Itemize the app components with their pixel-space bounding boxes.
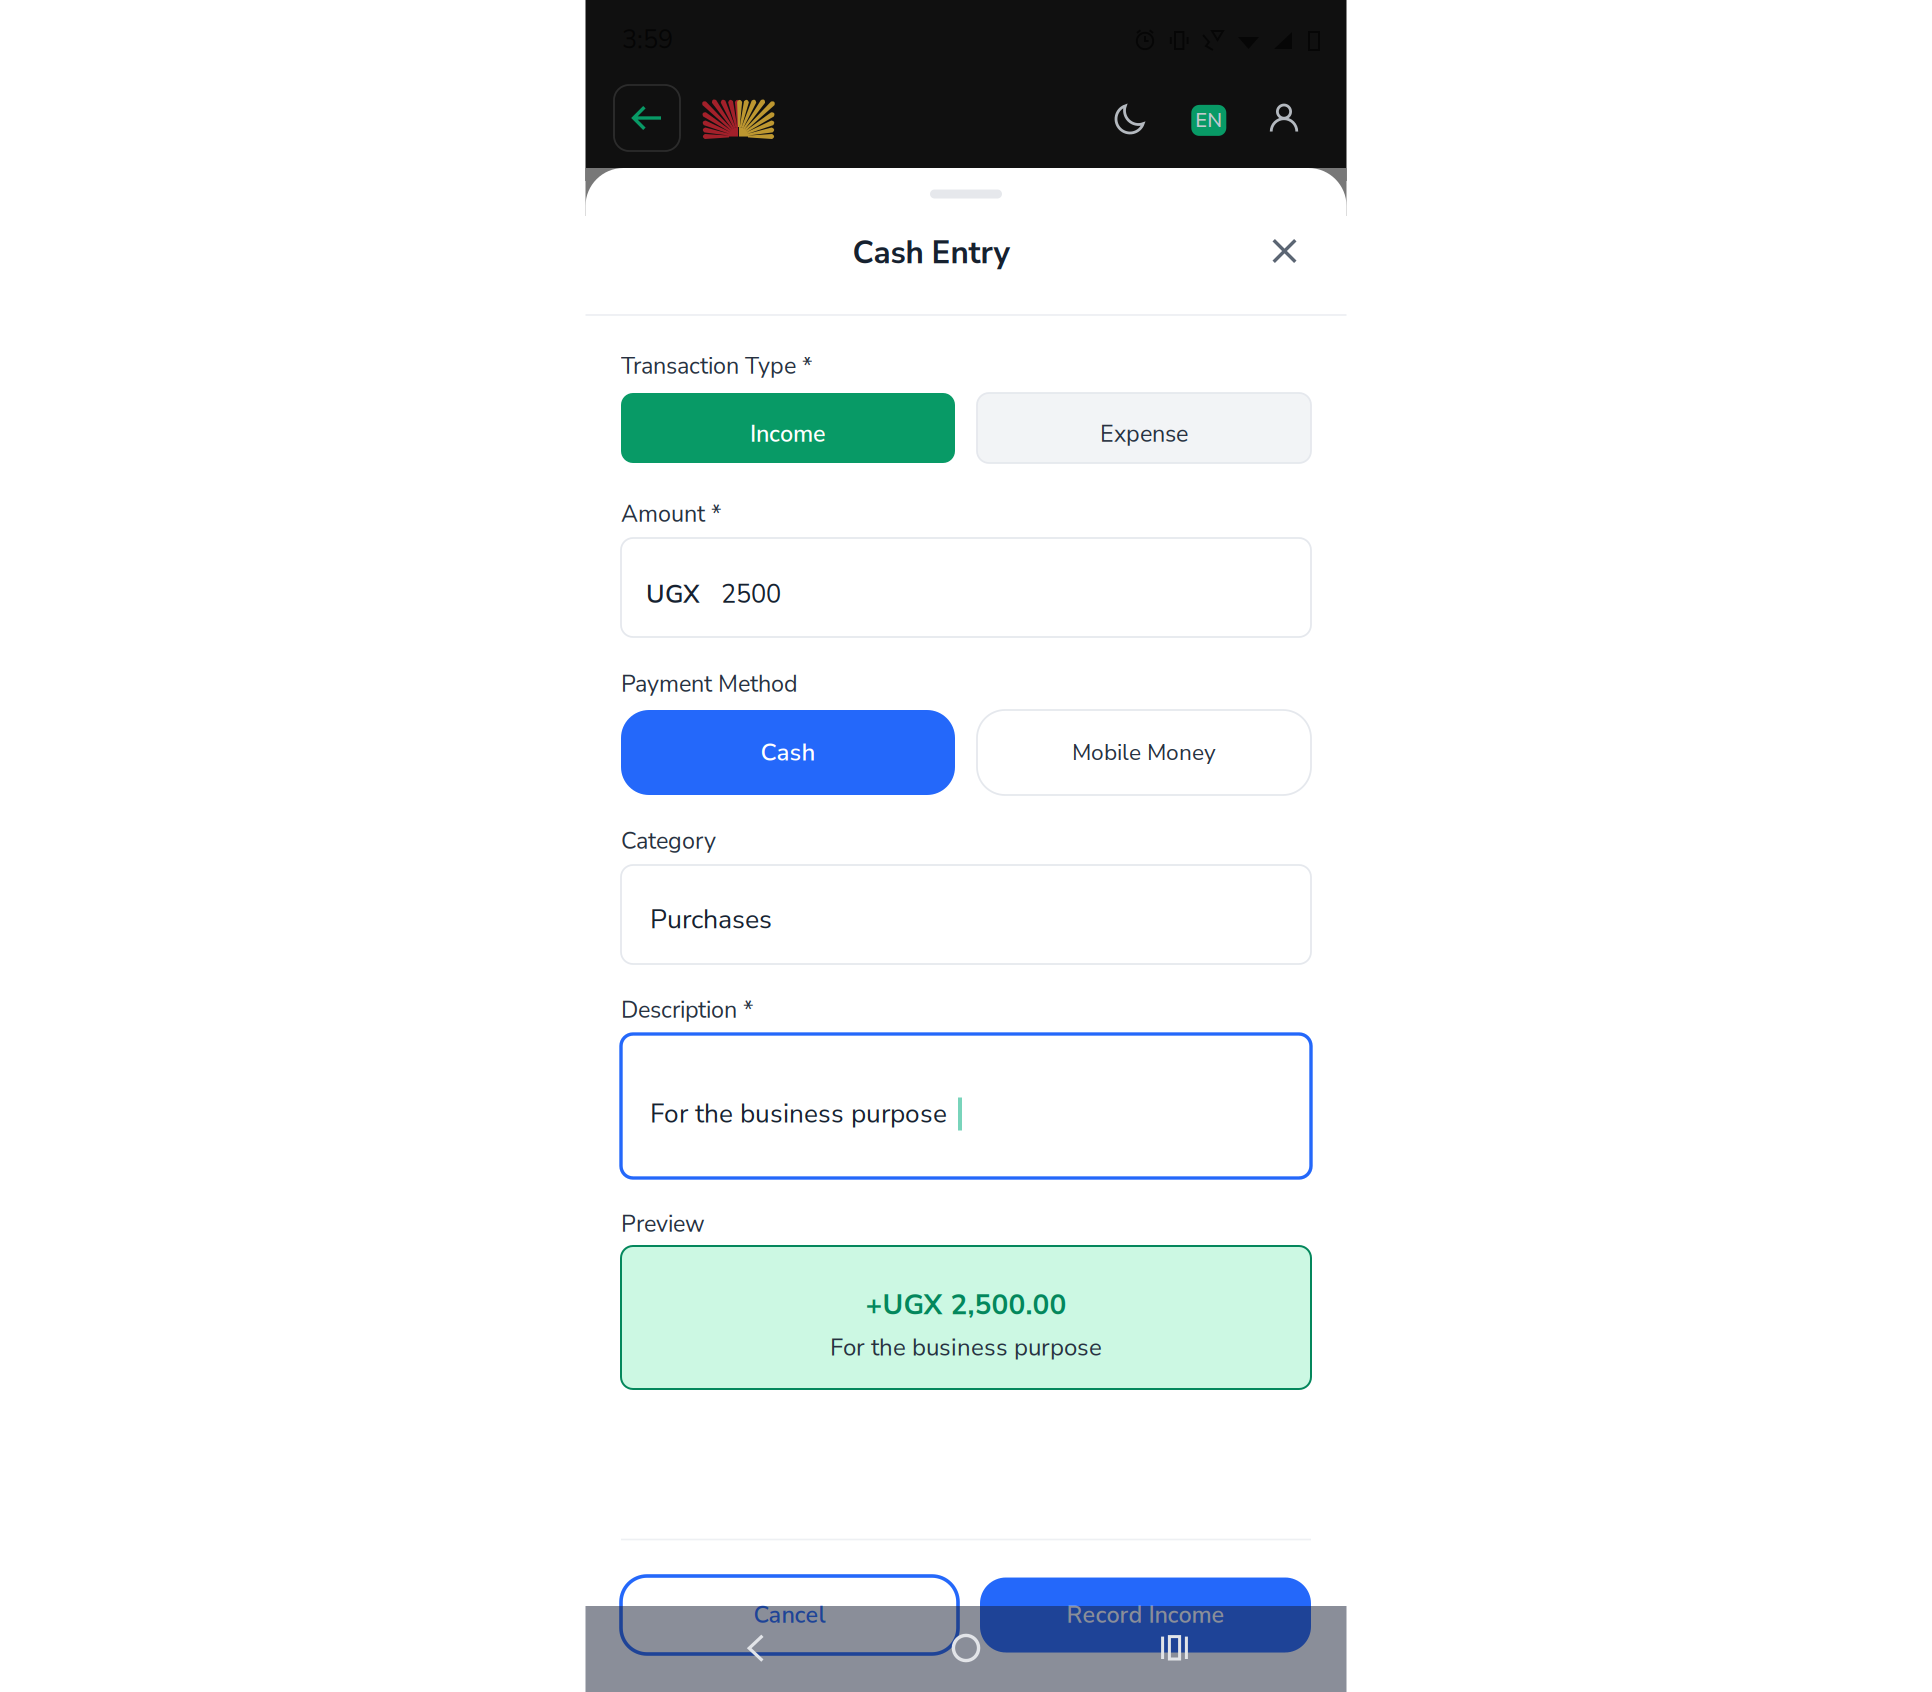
button[interactable]: Account [1267, 102, 1301, 136]
staticText: 3:59 [622, 23, 673, 57]
staticText: Transaction Type * [621, 350, 813, 382]
button[interactable]: Record Income [980, 1577, 1311, 1652]
staticText: For the business purpose [650, 1096, 947, 1132]
staticText: EN [1195, 107, 1222, 134]
staticText: Purchases [650, 901, 772, 938]
button[interactable]: Language: English [1191, 105, 1226, 136]
staticText: Preview [621, 1208, 705, 1240]
staticText: 2500 [721, 577, 781, 612]
button[interactable]: Cash [621, 710, 955, 795]
staticText: Cash Entry [852, 232, 1009, 274]
button[interactable]: Expense [977, 393, 1311, 463]
staticText: Income [750, 418, 826, 450]
button[interactable]: Income [621, 393, 955, 463]
staticText: Cash [760, 736, 815, 769]
staticText: Record Income [1066, 1599, 1224, 1631]
button[interactable]: Close [1272, 238, 1297, 263]
button[interactable]: Back [614, 85, 680, 151]
staticText: For the business purpose [830, 1331, 1102, 1364]
button[interactable]: Cancel [621, 1576, 958, 1654]
staticText: UGX [646, 577, 700, 612]
staticText: Amount * [621, 498, 722, 530]
staticText: +UGX 2,500.00 [865, 1286, 1066, 1324]
staticText: Category [621, 825, 716, 857]
staticText: Cancel [753, 1599, 825, 1631]
button[interactable]: Toggle dark mode [1113, 102, 1147, 136]
button[interactable]: Mobile Money [977, 710, 1311, 795]
staticText: Description * [621, 994, 754, 1026]
staticText: Expense [1100, 418, 1188, 450]
staticText: Payment Method [621, 668, 798, 700]
staticText: Mobile Money [1072, 737, 1216, 768]
